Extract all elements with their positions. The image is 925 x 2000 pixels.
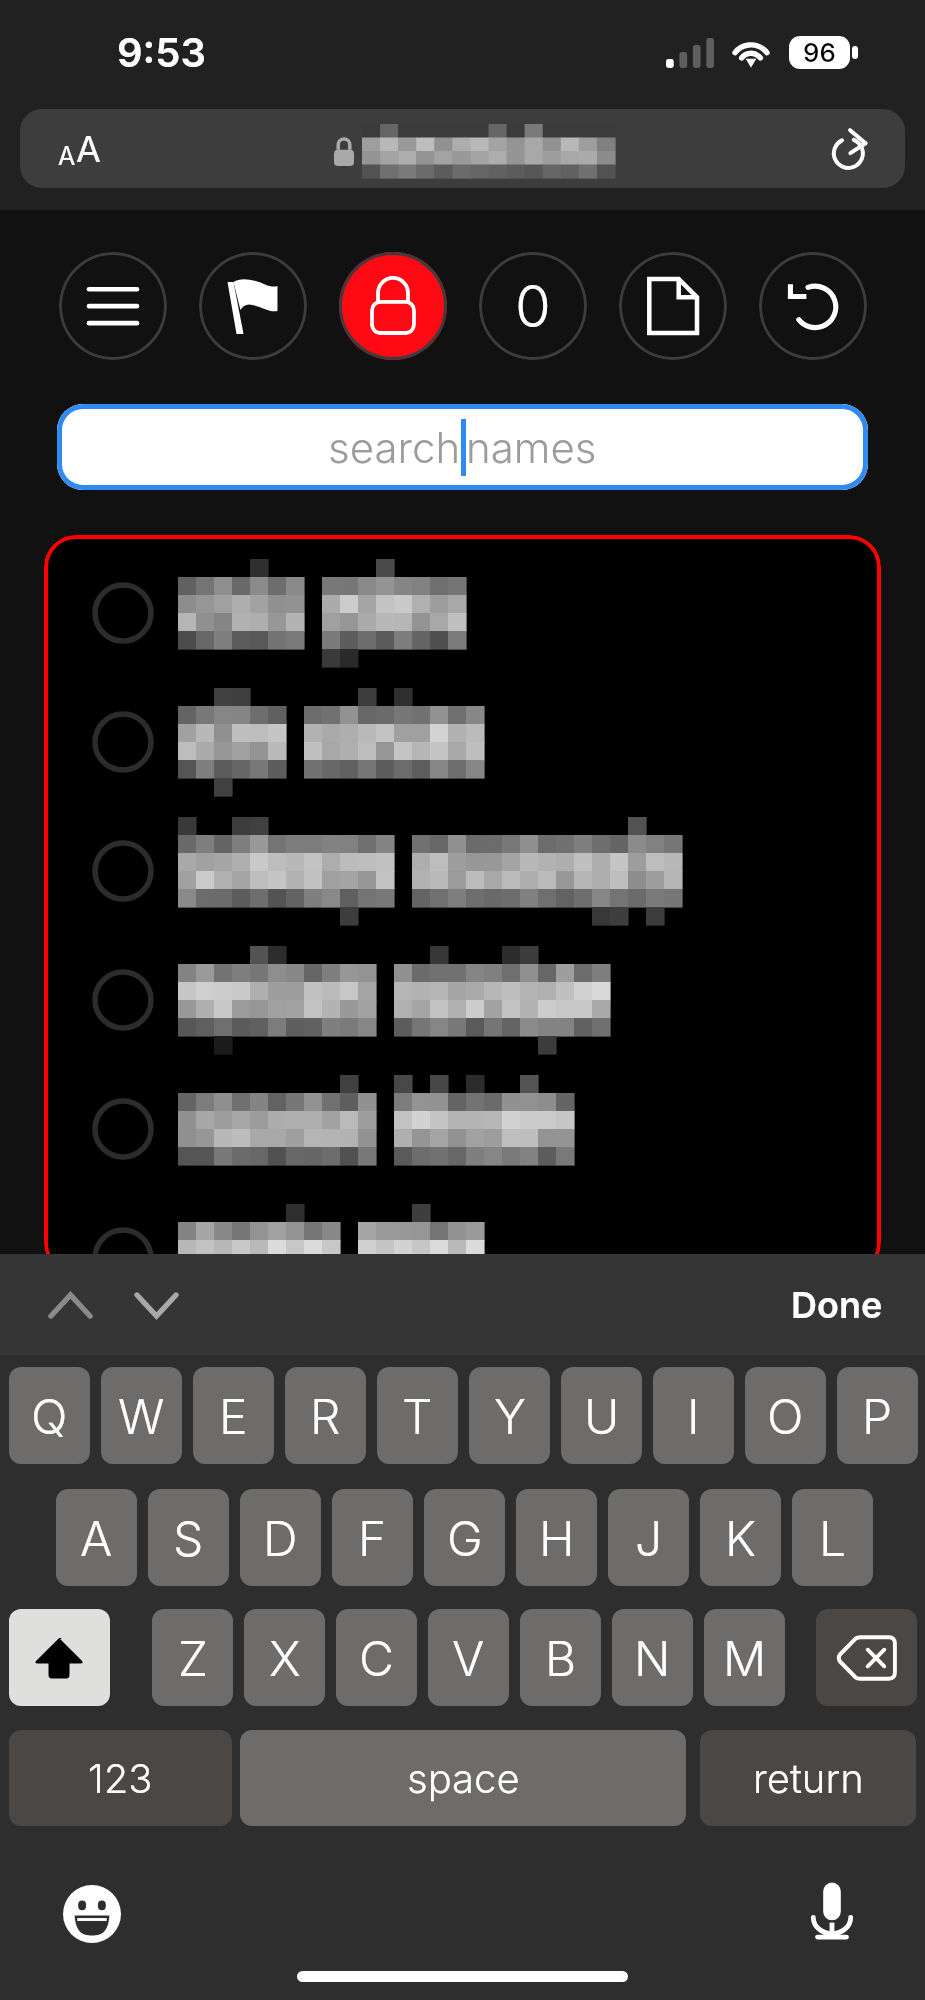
button[interactable]: O — [745, 1367, 826, 1464]
staticText: C — [359, 1629, 394, 1687]
staticText: I — [687, 1387, 700, 1445]
button[interactable]: D — [240, 1489, 321, 1586]
button[interactable]: Y — [469, 1367, 550, 1464]
staticText: L — [819, 1509, 847, 1567]
staticText: Q — [31, 1387, 68, 1445]
staticText: A — [80, 1509, 113, 1567]
button[interactable]: P — [837, 1367, 918, 1464]
staticText: return — [753, 1754, 864, 1802]
button[interactable]: Text size — [50, 119, 109, 179]
button[interactable]: E — [193, 1367, 274, 1464]
staticText: E — [219, 1387, 248, 1445]
button[interactable]: Backspace — [816, 1609, 917, 1706]
button[interactable]: S — [148, 1489, 229, 1586]
staticText: A — [76, 127, 101, 171]
button[interactable]: Next field — [119, 1268, 193, 1342]
button[interactable]: Reload — [821, 119, 881, 179]
staticText: M — [723, 1629, 767, 1687]
button[interactable]: return — [700, 1730, 916, 1826]
button[interactable] — [44, 563, 881, 663]
staticText: Done — [791, 1283, 883, 1327]
button[interactable]: G — [424, 1489, 505, 1586]
staticText: V — [452, 1629, 485, 1687]
staticText: K — [725, 1509, 757, 1567]
button[interactable]: Count — [479, 252, 587, 360]
staticText: F — [358, 1509, 387, 1567]
button[interactable]: B — [520, 1609, 601, 1706]
button[interactable]: J — [608, 1489, 689, 1586]
staticText: X — [269, 1629, 301, 1687]
button[interactable] — [44, 1079, 881, 1179]
button[interactable]: Q — [9, 1367, 90, 1464]
staticText: Y — [494, 1387, 526, 1445]
button[interactable]: N — [612, 1609, 693, 1706]
button[interactable]: F — [332, 1489, 413, 1586]
staticText: search — [328, 422, 461, 473]
button[interactable]: K — [700, 1489, 781, 1586]
button[interactable]: X — [244, 1609, 325, 1706]
staticText: J — [635, 1509, 663, 1567]
button[interactable]: U — [561, 1367, 642, 1464]
button[interactable]: H — [516, 1489, 597, 1586]
button[interactable]: 123 — [9, 1730, 232, 1826]
button[interactable]: Flag — [199, 252, 307, 360]
button[interactable] — [44, 950, 881, 1050]
staticText: P — [862, 1387, 893, 1445]
button[interactable] — [44, 821, 881, 921]
button[interactable]: Z — [152, 1609, 233, 1706]
button[interactable]: L — [792, 1489, 873, 1586]
button[interactable]: W — [101, 1367, 182, 1464]
button[interactable]: T — [377, 1367, 458, 1464]
button[interactable]: Previous field — [33, 1268, 107, 1342]
button[interactable]: V — [428, 1609, 509, 1706]
button[interactable]: search — [57, 404, 868, 490]
staticText: B — [545, 1629, 577, 1687]
staticText: 123 — [88, 1754, 153, 1802]
staticText: 0 — [515, 271, 551, 341]
button[interactable] — [44, 692, 881, 792]
staticText: U — [584, 1387, 620, 1445]
staticText: names — [466, 422, 597, 473]
button[interactable]: A — [56, 1489, 137, 1586]
staticText: N — [634, 1629, 671, 1687]
staticText: G — [447, 1509, 483, 1567]
staticText: W — [118, 1387, 165, 1445]
staticText: 96 — [803, 37, 836, 68]
button[interactable]: Emoji keyboard — [60, 1882, 124, 1946]
staticText: Z — [178, 1629, 208, 1687]
button[interactable]: Undo — [759, 252, 867, 360]
button[interactable]: Lock — [339, 252, 447, 360]
button[interactable]: Shift — [9, 1609, 110, 1706]
button[interactable]: Done — [783, 1275, 891, 1335]
staticText: 9:53 — [117, 28, 206, 76]
staticText: O — [767, 1387, 804, 1445]
staticText: R — [310, 1387, 341, 1445]
staticText: T — [402, 1387, 433, 1445]
button[interactable]: M — [704, 1609, 785, 1706]
button[interactable]: C — [336, 1609, 417, 1706]
button[interactable] — [44, 1208, 881, 1275]
button[interactable]: Dictation — [800, 1879, 864, 1943]
staticText: H — [539, 1509, 575, 1567]
button[interactable]: Page — [619, 252, 727, 360]
button[interactable]: R — [285, 1367, 366, 1464]
button[interactable]: I — [653, 1367, 734, 1464]
button[interactable]: Menu — [59, 252, 167, 360]
staticText: A — [58, 141, 76, 171]
button[interactable]: space — [240, 1730, 686, 1826]
staticText: D — [263, 1509, 298, 1567]
staticText: S — [173, 1509, 204, 1567]
staticText: space — [407, 1754, 520, 1802]
